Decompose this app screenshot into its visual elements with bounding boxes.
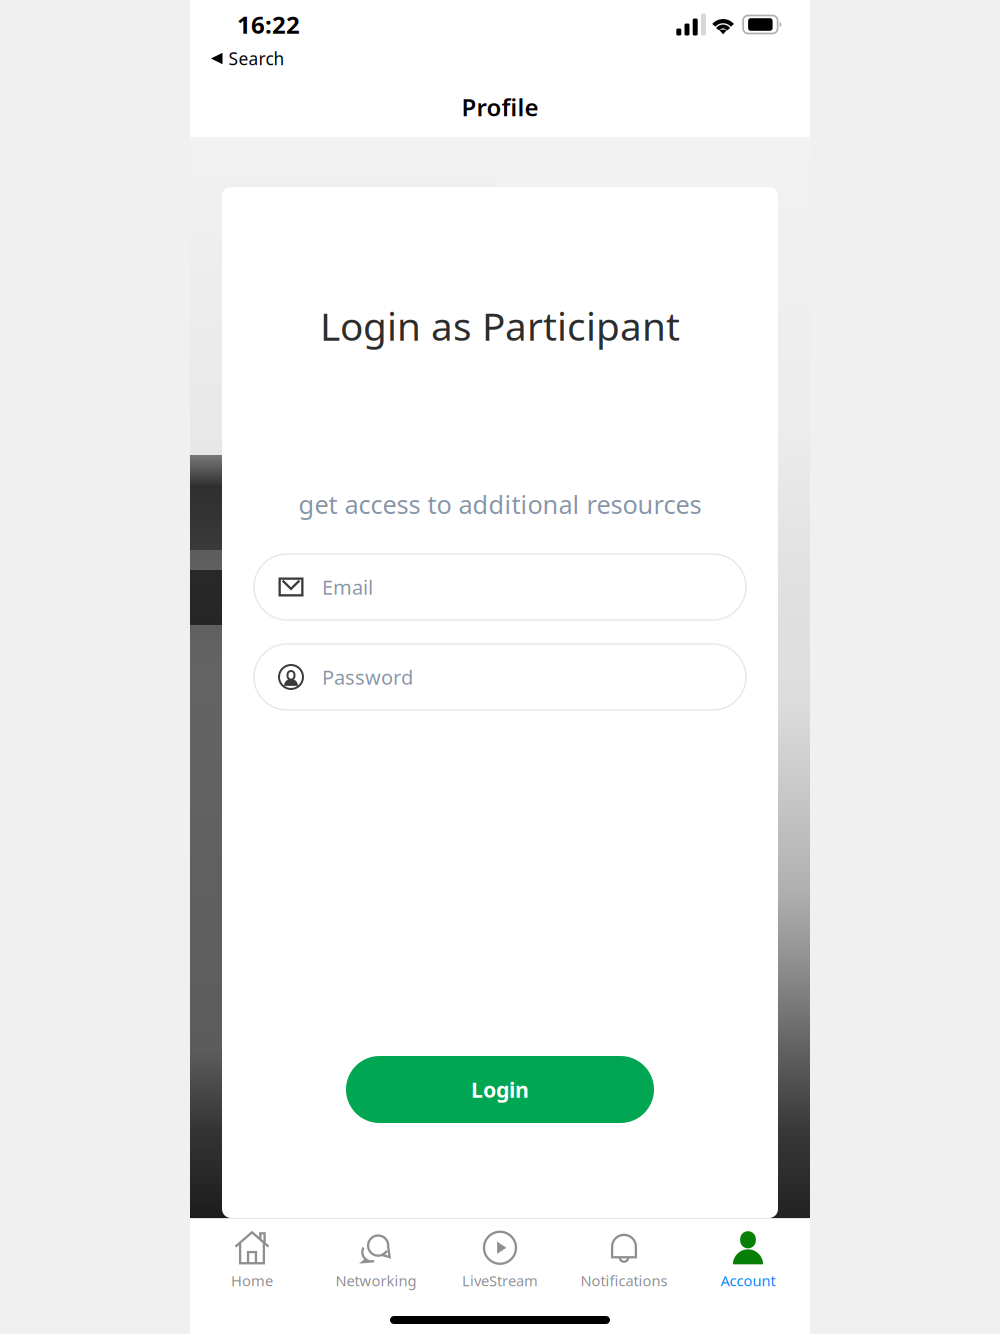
button[interactable]: Notifications — [562, 1223, 686, 1297]
staticText: 16:22 — [237, 9, 300, 40]
button[interactable]: Search — [190, 39, 294, 71]
button[interactable]: Account — [686, 1223, 810, 1297]
button[interactable]: Password — [254, 644, 746, 710]
button[interactable]: LiveStream — [438, 1223, 562, 1297]
staticText: Login as Participant — [320, 300, 680, 351]
staticText: Login — [471, 1075, 529, 1104]
staticText: Email — [322, 574, 373, 600]
staticText: Home — [231, 1271, 273, 1290]
staticText: Notifications — [580, 1271, 667, 1290]
staticText: LiveStream — [462, 1271, 538, 1290]
staticText: Account — [720, 1271, 775, 1290]
button[interactable]: Login — [346, 1056, 654, 1123]
button[interactable]: Email — [254, 554, 746, 620]
button[interactable]: Networking — [314, 1223, 438, 1297]
button[interactable]: Home — [190, 1223, 314, 1297]
staticText: Profile — [461, 91, 538, 123]
staticText: Networking — [335, 1271, 416, 1290]
staticText: Password — [322, 664, 413, 690]
staticText: Search — [228, 47, 284, 70]
staticText: get access to additional resources — [298, 487, 701, 521]
